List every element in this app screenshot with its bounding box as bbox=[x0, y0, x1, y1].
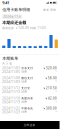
button[interactable]: 帮助 bbox=[50, 7, 57, 12]
staticText: 11 bbox=[24, 49, 26, 51]
staticText: 消费 bbox=[21, 70, 27, 73]
staticText: 已出 bbox=[55, 110, 57, 112]
staticText: 11 bbox=[13, 49, 15, 51]
staticText: 2024/11/18 bbox=[2, 97, 20, 100]
staticText: 2024/11/12 bbox=[2, 87, 20, 90]
staticText: 2024/11/22 bbox=[2, 107, 20, 110]
staticText: 11 bbox=[55, 49, 57, 51]
staticText: ￥210.50 bbox=[43, 87, 57, 90]
staticText: ￥320.00 bbox=[43, 66, 57, 70]
staticText: ￥58.00 bbox=[45, 76, 57, 80]
staticText: 2024/11/23 bbox=[2, 110, 20, 114]
staticText: 2024/11/19 bbox=[2, 100, 20, 104]
staticText: 消费 bbox=[21, 100, 27, 103]
staticText: 11 bbox=[34, 49, 36, 51]
staticText: 11 bbox=[8, 49, 10, 51]
staticText: 11 bbox=[3, 49, 5, 51]
button[interactable]: 2024/11/03 bbox=[0, 65, 59, 75]
staticText: 11 bbox=[45, 49, 47, 51]
staticText: 中国石化 bbox=[21, 107, 33, 110]
button[interactable]: 2024/11/22 bbox=[0, 105, 59, 115]
staticText: 微信支付 bbox=[21, 76, 33, 80]
staticText: 11 bbox=[50, 49, 52, 51]
staticText: 已出 bbox=[55, 100, 57, 102]
staticText: 本期应还金额 bbox=[2, 20, 26, 25]
staticText: 美团外卖 bbox=[21, 97, 33, 100]
staticText: 2024/11/05 bbox=[2, 70, 20, 74]
staticText: 消费 bbox=[21, 110, 27, 113]
staticText: 消费 bbox=[21, 80, 27, 83]
staticText: 最低还款 ￥120.00 到期 11/25 bbox=[2, 26, 46, 30]
button[interactable]: 信用卡账单明细 bbox=[2, 6, 30, 13]
staticText: 本期账单 bbox=[2, 56, 18, 61]
staticText: 账单 bbox=[43, 8, 49, 11]
button[interactable]: 2024/11/12 bbox=[0, 85, 59, 95]
staticText: 京东支付 bbox=[21, 66, 33, 70]
staticText: ￥42.00 bbox=[45, 97, 57, 100]
staticText: 支付宝 bbox=[21, 87, 30, 90]
staticText: 9:41 bbox=[2, 0, 9, 5]
button[interactable]: 2024/11/08 bbox=[0, 75, 59, 85]
staticText: 信用卡账单明细 bbox=[2, 7, 30, 12]
button[interactable]: 2024年11月 bbox=[2, 14, 22, 19]
staticText: 11 bbox=[18, 49, 20, 51]
staticText: 2024/11/08 bbox=[2, 76, 20, 80]
staticText: 2024/11/13 bbox=[2, 90, 20, 94]
staticText: 2024/11/03 bbox=[2, 66, 20, 70]
button[interactable]: 账单 bbox=[42, 7, 50, 12]
staticText: 帮助 bbox=[50, 8, 56, 11]
staticText: 2024/11/09 bbox=[2, 80, 20, 84]
staticText: 共 5 笔 bbox=[2, 62, 12, 65]
staticText: 11 bbox=[29, 49, 31, 51]
staticText: 立即还款 bbox=[23, 123, 35, 127]
staticText: 消费 bbox=[21, 90, 27, 93]
staticText: ￥300.00 bbox=[43, 107, 57, 110]
button[interactable]: 2024/11/18 bbox=[0, 95, 59, 105]
staticText: 2024年11月 bbox=[3, 15, 21, 18]
staticText: 11 bbox=[39, 49, 41, 51]
